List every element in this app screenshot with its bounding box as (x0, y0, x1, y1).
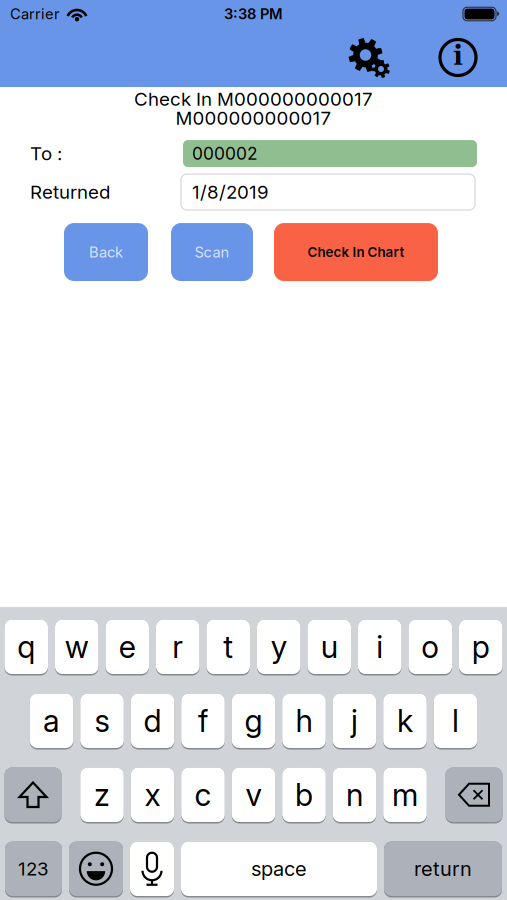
staticText: p (472, 629, 490, 665)
staticText: M000000000017 (175, 107, 331, 129)
staticText: To : (30, 142, 62, 164)
staticText: r (172, 629, 183, 665)
button[interactable]: w (55, 619, 98, 675)
button[interactable]: Shift (4, 767, 61, 823)
button[interactable]: m (383, 767, 427, 823)
button[interactable]: space (181, 841, 377, 897)
button[interactable]: t (206, 619, 250, 675)
button[interactable]: d (131, 693, 174, 749)
staticText: Returned (30, 181, 110, 203)
button[interactable]: h (282, 693, 326, 749)
staticText: t (223, 629, 233, 665)
staticText: m (392, 777, 418, 813)
staticText: j (351, 703, 358, 739)
button[interactable]: f (181, 693, 225, 749)
button[interactable]: i (358, 619, 401, 675)
staticText: Check In M000000000017 (134, 88, 373, 110)
staticText: 1/8/2019 (192, 181, 269, 203)
staticText: g (244, 703, 262, 739)
staticText: w (65, 629, 89, 665)
staticText: f (198, 703, 208, 739)
button[interactable]: r (156, 619, 199, 675)
button[interactable]: s (80, 693, 124, 749)
staticText: v (245, 777, 261, 813)
staticText: l (452, 703, 459, 739)
button[interactable]: Settings (349, 40, 388, 74)
button[interactable]: Dictation (130, 841, 174, 897)
staticText: o (421, 629, 439, 665)
button[interactable]: Info (440, 39, 476, 75)
staticText: u (321, 629, 338, 665)
staticText: z (94, 777, 110, 813)
button[interactable]: a (30, 693, 73, 749)
button[interactable]: q (4, 619, 48, 675)
button[interactable]: k (383, 693, 427, 749)
button[interactable]: l (434, 693, 477, 749)
staticText: Back (89, 243, 123, 261)
button[interactable]: z (80, 767, 124, 823)
button[interactable]: e (105, 619, 149, 675)
button[interactable]: 123 (5, 841, 62, 897)
button[interactable]: v (232, 767, 275, 823)
staticText: h (295, 703, 312, 739)
staticText: x (144, 777, 160, 813)
button[interactable]: p (459, 619, 502, 675)
staticText: a (43, 703, 60, 739)
button[interactable]: b (282, 767, 326, 823)
staticText: Carrier (10, 5, 60, 23)
staticText: k (397, 703, 413, 739)
staticText: 123 (18, 858, 49, 880)
button[interactable]: To field (183, 140, 477, 167)
button[interactable]: Scan (171, 223, 253, 281)
staticText: d (143, 703, 161, 739)
staticText: q (17, 629, 35, 665)
staticText: return (414, 857, 472, 881)
button[interactable]: return (384, 841, 502, 897)
button[interactable]: Delete (445, 767, 502, 823)
staticText: b (295, 777, 313, 813)
staticText: 3:38 PM (224, 5, 283, 23)
button[interactable]: x (131, 767, 174, 823)
button[interactable]: u (307, 619, 351, 675)
button[interactable]: y (257, 619, 300, 675)
staticText: i (376, 629, 383, 665)
staticText: e (119, 629, 136, 665)
button[interactable]: j (333, 693, 376, 749)
button[interactable]: o (408, 619, 452, 675)
staticText: Scan (194, 243, 229, 261)
staticText: n (346, 777, 363, 813)
button[interactable]: Check In Chart (274, 223, 438, 281)
button[interactable]: n (333, 767, 376, 823)
button[interactable]: Returned date field (181, 174, 475, 210)
button[interactable]: Back (64, 223, 148, 281)
staticText: space (251, 857, 307, 881)
staticText: Check In Chart (307, 244, 404, 260)
staticText: i (453, 39, 463, 74)
staticText: c (194, 777, 211, 813)
staticText: s (94, 703, 109, 739)
button[interactable]: c (181, 767, 225, 823)
button[interactable]: g (232, 693, 275, 749)
staticText: 000002 (192, 143, 258, 164)
button[interactable]: Emoji (69, 841, 123, 897)
staticText: y (271, 629, 287, 665)
